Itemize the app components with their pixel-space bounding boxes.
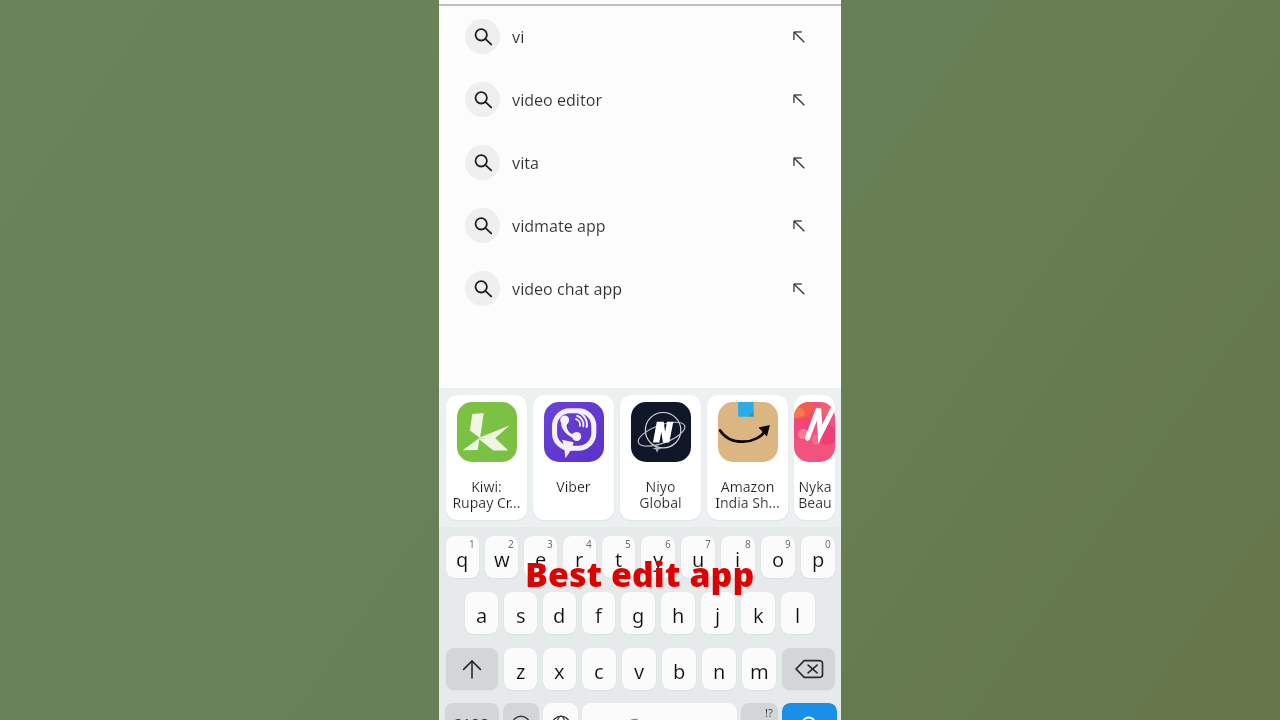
- staticText: y: [653, 546, 664, 573]
- staticText: Niyo Global: [639, 477, 682, 512]
- button[interactable]: Insert suggestion: video chat app: [784, 274, 814, 304]
- staticText: d: [553, 602, 566, 629]
- button[interactable]: ?123: [445, 703, 499, 720]
- button[interactable]: u: [681, 536, 715, 578]
- button[interactable]: e: [524, 536, 557, 578]
- staticText: 0: [825, 537, 831, 551]
- staticText: f: [595, 602, 602, 629]
- button[interactable]: vita: [439, 131, 841, 194]
- button[interactable]: y: [641, 536, 675, 578]
- staticText: 5: [625, 537, 631, 551]
- staticText: !?: [765, 705, 773, 720]
- staticText: 6: [665, 537, 671, 551]
- staticText: o: [772, 546, 785, 573]
- staticText: u: [692, 546, 705, 573]
- button[interactable]: Amazon India Sh...: [707, 395, 788, 520]
- staticText: video chat app: [512, 278, 623, 300]
- button[interactable]: n: [702, 648, 736, 690]
- button[interactable]: c: [582, 648, 616, 690]
- button[interactable]: Insert suggestion: video editor: [784, 85, 814, 115]
- button[interactable]: Insert suggestion: vita: [784, 148, 814, 178]
- button[interactable]: l: [781, 592, 815, 634]
- button[interactable]: Shift: [446, 648, 498, 690]
- button[interactable]: t: [602, 536, 635, 578]
- staticText: q: [456, 546, 469, 573]
- staticText: Viber: [556, 477, 591, 496]
- staticText: vidmate app: [512, 215, 606, 237]
- staticText: w: [494, 546, 510, 573]
- staticText: 9: [785, 537, 791, 551]
- staticText: 8: [745, 537, 751, 551]
- button[interactable]: i: [721, 536, 755, 578]
- staticText: vita: [512, 152, 540, 174]
- button[interactable]: s: [504, 592, 537, 634]
- staticText: g: [632, 602, 645, 629]
- button[interactable]: v: [622, 648, 656, 690]
- staticText: s: [516, 602, 526, 629]
- button[interactable]: z: [504, 648, 537, 690]
- button[interactable]: f: [582, 592, 615, 634]
- staticText: t: [615, 546, 623, 573]
- staticText: vi: [512, 26, 525, 48]
- button[interactable]: Change language: [543, 703, 578, 720]
- staticText: video editor: [512, 89, 603, 111]
- staticText: 3: [547, 537, 553, 551]
- button[interactable]: Niyo Global: [620, 395, 701, 520]
- button[interactable]: Punctuation: [741, 703, 778, 720]
- staticText: b: [673, 658, 686, 685]
- staticText: k: [753, 602, 764, 629]
- button[interactable]: Viber: [533, 395, 614, 520]
- button[interactable]: x: [543, 648, 576, 690]
- button[interactable]: video editor: [439, 68, 841, 131]
- staticText: a: [476, 602, 488, 629]
- button[interactable]: a: [465, 592, 498, 634]
- staticText: Nyka Beau: [798, 477, 832, 512]
- button[interactable]: video chat app: [439, 257, 841, 320]
- button[interactable]: Search: [782, 703, 837, 720]
- button[interactable]: h: [661, 592, 695, 634]
- staticText: v: [634, 658, 645, 685]
- button[interactable]: g: [621, 592, 655, 634]
- button[interactable]: Emoji: [503, 703, 539, 720]
- staticText: 1: [469, 537, 475, 551]
- staticText: i: [735, 546, 741, 573]
- button[interactable]: w: [485, 536, 518, 578]
- staticText: 7: [705, 537, 711, 551]
- staticText: Kiwi: Rupay Cr...: [452, 477, 521, 512]
- button[interactable]: vidmate app: [439, 194, 841, 257]
- button[interactable]: r: [563, 536, 596, 578]
- button[interactable]: q: [446, 536, 479, 578]
- button[interactable]: j: [701, 592, 735, 634]
- staticText: j: [715, 602, 721, 629]
- button[interactable]: m: [742, 648, 776, 690]
- button[interactable]: English: [582, 703, 737, 720]
- staticText: h: [672, 602, 685, 629]
- staticText: Best edit app: [525, 551, 755, 597]
- staticText: ?123: [455, 714, 490, 720]
- button[interactable]: o: [761, 536, 795, 578]
- button[interactable]: p: [801, 536, 835, 578]
- staticText: n: [713, 658, 726, 685]
- staticText: c: [594, 658, 604, 685]
- button[interactable]: Nyka Beau: [794, 395, 835, 520]
- staticText: p: [812, 546, 825, 573]
- button[interactable]: Backspace: [782, 648, 835, 690]
- staticText: l: [795, 602, 801, 629]
- button[interactable]: vi: [439, 5, 841, 68]
- staticText: z: [516, 658, 526, 685]
- button[interactable]: Insert suggestion: vi: [784, 22, 814, 52]
- button[interactable]: Kiwi: Rupay Cr...: [446, 395, 527, 520]
- staticText: e: [535, 546, 547, 573]
- staticText: 2: [508, 537, 514, 551]
- button[interactable]: k: [741, 592, 775, 634]
- staticText: Amazon India Sh...: [715, 477, 780, 512]
- button[interactable]: Insert suggestion: vidmate app: [784, 211, 814, 241]
- staticText: r: [575, 546, 584, 573]
- button[interactable]: d: [543, 592, 576, 634]
- staticText: 4: [586, 537, 592, 551]
- button[interactable]: b: [662, 648, 696, 690]
- staticText: x: [554, 658, 565, 685]
- staticText: m: [750, 658, 769, 685]
